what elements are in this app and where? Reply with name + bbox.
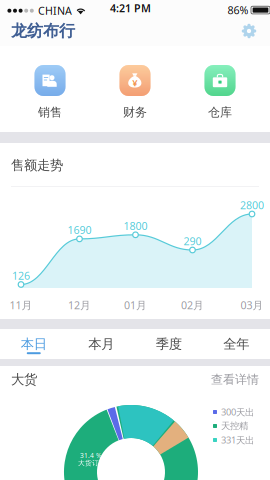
staticText: CHINA [38,4,72,18]
staticText: 02月 [181,298,204,312]
button[interactable]: 本日 [0,329,67,359]
staticText: 126 [12,268,30,283]
staticText: 查看详情 [211,372,259,387]
staticText: 86% [227,3,248,17]
staticText: 2800 [240,198,264,212]
staticText: 31.4 % [80,451,102,460]
staticText: 4:21 PM [110,1,151,15]
staticText: 本月 [88,336,114,352]
staticText: 03月 [240,298,263,312]
staticText: 11月 [9,298,32,312]
button[interactable]: 季度 [135,329,202,359]
staticText: 财务 [123,105,147,120]
button[interactable]: 设置 [236,18,262,44]
staticText: 全年 [223,336,249,352]
button[interactable]: 全年 [202,329,270,359]
staticText: 1800 [123,219,147,233]
staticText: 大货 [11,371,37,388]
staticText: 天控精 [221,420,248,432]
staticText: 300天出 [221,406,254,418]
staticText: 季度 [156,336,182,352]
staticText: ¥ [132,76,137,89]
staticText: 01月 [124,298,147,312]
staticText: 大货订单 [78,459,106,467]
staticText: 331天出 [221,434,254,446]
button[interactable]: 仓库 [189,65,251,120]
staticText: 1690 [67,223,91,237]
button[interactable]: 本月 [67,329,135,359]
button[interactable]: 销售 [19,65,81,120]
staticText: 龙纺布行 [11,21,75,41]
button[interactable]: 查看详情 [211,372,259,387]
button[interactable]: ¥ [104,65,166,120]
staticText: 售额走势 [11,157,63,173]
staticText: 销售 [38,105,62,120]
staticText: 290 [183,234,201,248]
staticText: 仓库 [208,105,232,120]
staticText: 12月 [68,298,91,312]
staticText: 本日 [21,336,47,352]
